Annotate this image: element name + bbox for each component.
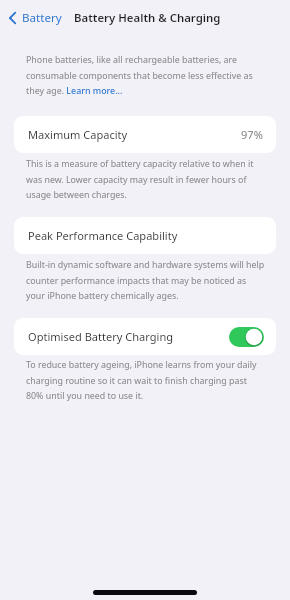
staticText: Battery: [22, 10, 62, 26]
button[interactable]: Optimised Battery Charging toggle: [229, 327, 264, 347]
button[interactable]: Peak Performance Capability: [14, 217, 276, 254]
staticText: 97%: [241, 127, 263, 142]
button[interactable]: Back to Battery: [0, 5, 68, 31]
staticText: Maximum Capacity: [28, 127, 128, 142]
staticText: To reduce battery ageing, iPhone learns …: [26, 359, 266, 401]
button[interactable]: Learn more: [63, 84, 122, 97]
staticText: Battery Health & Charging: [74, 10, 221, 26]
staticText: Peak Performance Capability: [28, 228, 178, 243]
staticText: Built-in dynamic software and hardware s…: [26, 259, 266, 301]
staticText: Optimised Battery Charging: [28, 329, 174, 344]
staticText: Phone batteries, like all rechargeable b…: [26, 54, 266, 96]
button[interactable]: Optimised Battery Charging: [14, 318, 276, 355]
staticText: This is a measure of battery capacity re…: [26, 158, 266, 200]
button[interactable]: Maximum Capacity: [14, 116, 276, 153]
